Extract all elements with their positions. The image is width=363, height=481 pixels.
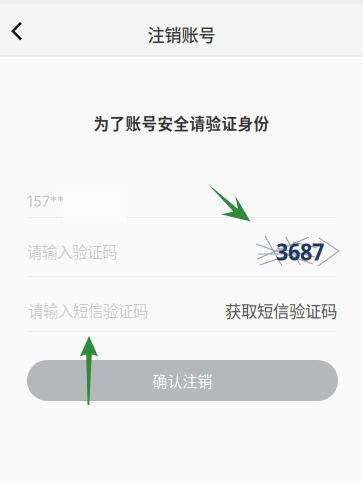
staticText: 为了账号安全请验证身份	[93, 112, 269, 134]
staticText: 请输入验证码	[27, 240, 117, 262]
staticText: 注销账号	[147, 22, 215, 46]
button[interactable]: 获取短信验证码	[177, 293, 337, 327]
staticText: 157**	[27, 193, 64, 210]
staticText: 请输入短信验证码	[28, 299, 148, 321]
staticText: 确认注销	[152, 370, 212, 391]
button[interactable]: 确认注销	[27, 360, 338, 401]
staticText: 3687	[276, 236, 324, 267]
button[interactable]: Back	[0, 9, 39, 53]
staticText: 获取短信验证码	[225, 298, 337, 322]
